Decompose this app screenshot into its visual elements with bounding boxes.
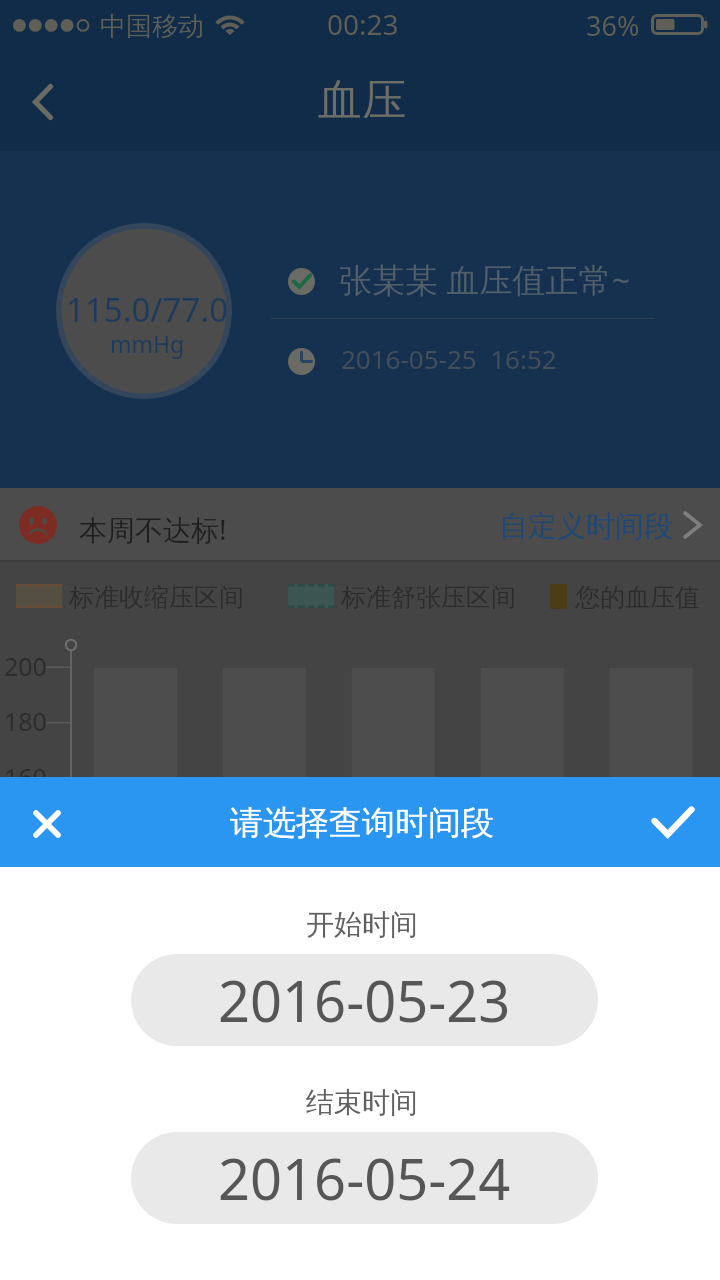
staticText: 00:23 xyxy=(327,5,399,43)
staticText: 160 xyxy=(4,760,47,794)
button[interactable]: 2016-05-24 xyxy=(131,1132,598,1224)
staticText: 请选择查询时间段 xyxy=(230,802,494,844)
staticText: 自定义时间段 xyxy=(499,508,673,545)
staticText: 血压 xyxy=(318,73,406,128)
staticText: 本周不达标! xyxy=(79,510,227,548)
staticText: 中国移动 xyxy=(100,10,204,43)
staticText: 2016-05-23 xyxy=(218,962,511,1038)
staticText: 2016-05-25 16:52 xyxy=(341,341,557,376)
staticText: 张某某 血压值正常~ xyxy=(339,257,631,302)
staticText: 115.0/77.0 xyxy=(66,287,229,332)
staticText: 结束时间 xyxy=(306,1085,418,1120)
staticText: 200 xyxy=(4,649,47,683)
button[interactable]: Close xyxy=(0,777,92,867)
staticText: mmHg xyxy=(110,328,185,359)
staticText: 180 xyxy=(4,704,47,738)
staticText: 标准收缩压区间 xyxy=(69,582,244,613)
button[interactable]: 自定义时间段 xyxy=(490,488,716,562)
staticText: 您的血压值 xyxy=(575,582,700,613)
staticText: 开始时间 xyxy=(306,907,418,942)
staticText: 36% xyxy=(586,7,640,44)
staticText: 2016-05-24 xyxy=(218,1140,511,1216)
staticText: 标准舒张压区间 xyxy=(341,582,516,613)
button[interactable]: 本周不达标! xyxy=(0,488,720,562)
button[interactable]: Back xyxy=(0,52,88,151)
button[interactable]: Confirm xyxy=(628,777,720,867)
button[interactable]: 2016-05-23 xyxy=(131,954,598,1046)
